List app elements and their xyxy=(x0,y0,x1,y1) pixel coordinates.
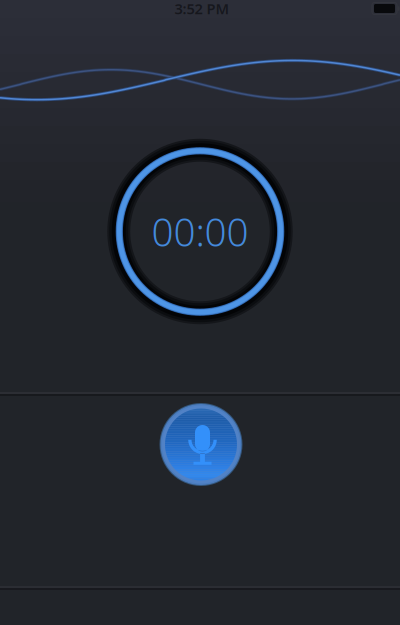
staticText: 3:52 PM xyxy=(174,0,229,18)
button[interactable]: Record xyxy=(156,399,246,489)
staticText: 00:00 xyxy=(151,206,248,257)
